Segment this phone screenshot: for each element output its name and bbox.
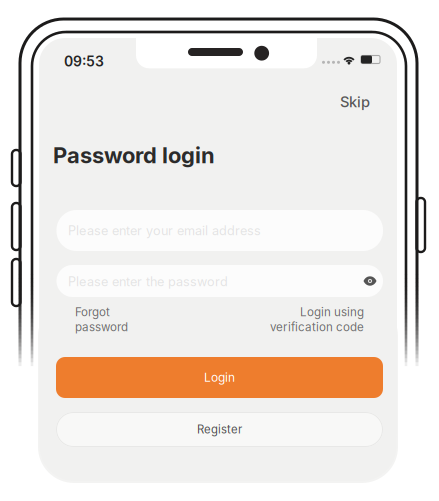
- staticText: Login: [204, 370, 235, 385]
- staticText: Login using: [300, 305, 364, 319]
- staticText: password: [75, 320, 128, 334]
- staticText: Register: [197, 423, 242, 436]
- staticText: Please enter your email address: [68, 223, 261, 238]
- button[interactable]: Login: [56, 357, 383, 398]
- button[interactable]: Show password: [360, 272, 380, 290]
- button[interactable]: Forgot: [75, 305, 128, 334]
- button[interactable]: Login using: [269, 305, 364, 334]
- staticText: Forgot: [75, 305, 110, 319]
- staticText: Password login: [53, 142, 215, 169]
- staticText: verification code: [270, 320, 364, 334]
- button[interactable]: Skip: [334, 89, 376, 115]
- staticText: Skip: [340, 93, 370, 111]
- button[interactable]: Register: [56, 412, 383, 447]
- staticText: 09:53: [64, 53, 104, 70]
- staticText: Please enter the password: [68, 274, 228, 289]
